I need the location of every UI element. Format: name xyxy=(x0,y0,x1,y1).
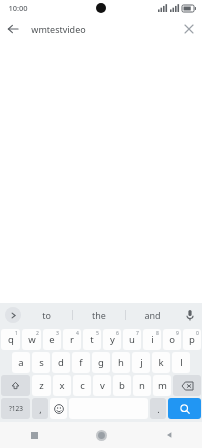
button[interactable]: t xyxy=(83,329,101,350)
button[interactable]: Home xyxy=(68,422,135,448)
button[interactable]: Recent apps xyxy=(0,422,68,448)
button[interactable]: the xyxy=(73,303,125,327)
staticText: 0 xyxy=(196,330,199,337)
button[interactable]: c xyxy=(73,375,91,396)
staticText: , xyxy=(39,403,42,415)
staticText: c xyxy=(80,379,85,392)
staticText: . xyxy=(157,403,160,415)
staticText: z xyxy=(39,379,44,392)
staticText: the xyxy=(92,309,106,321)
staticText: 9 xyxy=(176,330,179,337)
staticText: i xyxy=(151,333,154,346)
button[interactable]: a xyxy=(12,352,30,373)
staticText: b xyxy=(119,379,125,392)
staticText: e xyxy=(49,333,55,346)
staticText: 6 xyxy=(116,330,119,337)
staticText: g xyxy=(98,356,104,369)
staticText: 1 xyxy=(15,330,18,337)
staticText: v xyxy=(100,379,105,392)
button[interactable]: Clear xyxy=(176,16,202,42)
staticText: wmtestvideo xyxy=(31,23,86,35)
button[interactable]: . xyxy=(150,398,166,419)
staticText: k xyxy=(158,356,164,369)
staticText: x xyxy=(59,379,65,392)
staticText: o xyxy=(169,333,175,346)
button[interactable]: Voice input xyxy=(178,303,202,327)
button[interactable]: z xyxy=(32,375,51,396)
button[interactable]: Back xyxy=(0,16,26,42)
button[interactable]: g xyxy=(92,352,110,373)
staticText: s xyxy=(39,356,44,369)
button[interactable]: to xyxy=(21,303,72,327)
button[interactable]: Backspace xyxy=(173,375,201,396)
staticText: to xyxy=(42,309,51,321)
staticText: 5 xyxy=(96,330,99,337)
staticText: h xyxy=(118,356,124,369)
staticText: m xyxy=(158,379,167,392)
staticText: y xyxy=(110,333,115,346)
button[interactable]: b xyxy=(113,375,131,396)
button[interactable]: j xyxy=(132,352,150,373)
button[interactable]: f xyxy=(72,352,90,373)
button[interactable]: h xyxy=(112,352,130,373)
button[interactable]: Search xyxy=(168,398,201,419)
button[interactable]: Emoji xyxy=(50,398,67,419)
staticText: j xyxy=(140,356,143,369)
staticText: 4 xyxy=(76,330,79,337)
button[interactable]: u xyxy=(123,329,141,350)
button[interactable]: s xyxy=(32,352,50,373)
button[interactable]: q xyxy=(1,329,20,350)
staticText: u xyxy=(129,333,135,346)
button[interactable]: e xyxy=(43,329,61,350)
button[interactable]: i xyxy=(143,329,161,350)
staticText: l xyxy=(180,356,183,369)
staticText: and xyxy=(144,309,161,321)
button[interactable]: ?123 xyxy=(1,398,30,419)
button[interactable]: p xyxy=(183,329,201,350)
staticText: 2 xyxy=(36,330,39,337)
button[interactable]: Expand suggestions xyxy=(5,307,21,323)
button[interactable]: v xyxy=(93,375,111,396)
staticText: ?123 xyxy=(9,404,23,413)
staticText: d xyxy=(58,356,64,369)
button[interactable]: r xyxy=(63,329,81,350)
button[interactable]: n xyxy=(133,375,151,396)
button[interactable]: and xyxy=(126,303,178,327)
button[interactable]: x xyxy=(53,375,71,396)
button[interactable]: d xyxy=(52,352,70,373)
button[interactable]: m xyxy=(153,375,171,396)
staticText: p xyxy=(189,333,195,346)
staticText: f xyxy=(79,356,83,369)
staticText: a xyxy=(18,356,24,369)
staticText: n xyxy=(139,379,145,392)
staticText: 3 xyxy=(56,330,59,337)
button[interactable]: o xyxy=(163,329,181,350)
button[interactable]: k xyxy=(152,352,170,373)
staticText: 7 xyxy=(136,330,139,337)
button[interactable]: , xyxy=(32,398,48,419)
staticText: 10:00 xyxy=(8,3,28,13)
staticText: q xyxy=(8,333,14,346)
staticText: r xyxy=(70,333,74,346)
staticText: t xyxy=(90,333,94,346)
button[interactable]: Shift xyxy=(1,375,30,396)
button[interactable]: y xyxy=(103,329,121,350)
button[interactable]: l xyxy=(172,352,190,373)
button[interactable]: Back xyxy=(135,422,202,448)
staticText: 8 xyxy=(156,330,159,337)
button[interactable]: wmtestvideo xyxy=(26,19,176,39)
button[interactable]: w xyxy=(22,329,41,350)
staticText: w xyxy=(28,333,36,346)
